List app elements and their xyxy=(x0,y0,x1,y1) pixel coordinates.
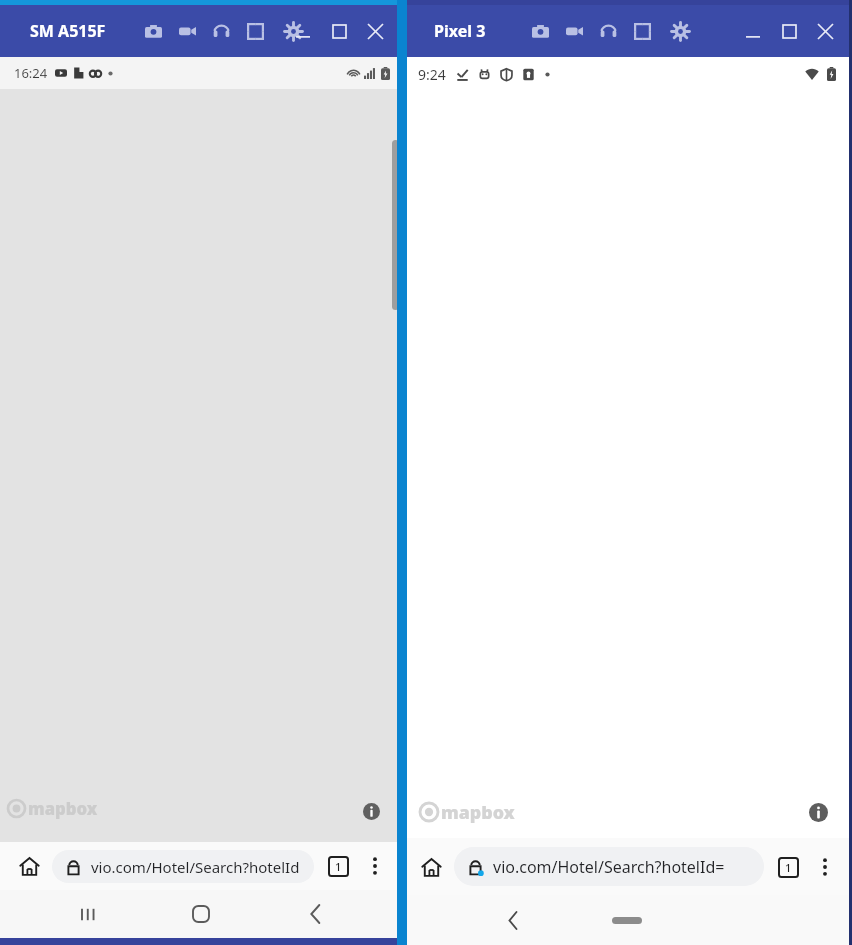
staticText: 1 xyxy=(785,860,792,875)
button[interactable]: Home xyxy=(412,848,450,886)
button[interactable]: Map information xyxy=(360,800,382,822)
button[interactable]: Switch tabs xyxy=(770,849,806,885)
button[interactable]: More options xyxy=(358,849,392,883)
button[interactable]: vio.com/Hotel/Search?hotelId= xyxy=(454,847,764,886)
button[interactable]: Maximize xyxy=(326,18,352,44)
button[interactable]: Close xyxy=(812,18,838,44)
button[interactable]: vio.com/Hotel/Search?hotelId xyxy=(52,850,314,883)
staticText: vio.com/Hotel/Search?hotelId= xyxy=(493,856,725,878)
staticText: 9:24 xyxy=(418,65,446,84)
button[interactable]: Resize xyxy=(242,18,268,44)
button[interactable]: Back xyxy=(490,897,536,943)
button[interactable]: Record screen xyxy=(174,18,200,44)
button[interactable]: Audio xyxy=(208,18,234,44)
staticText: 1 xyxy=(335,859,342,874)
staticText: SM A515F xyxy=(30,20,106,42)
button[interactable]: Minimize xyxy=(290,18,316,44)
button[interactable]: Minimize xyxy=(740,18,766,44)
button[interactable]: Switch tabs xyxy=(320,848,356,884)
button[interactable]: Close xyxy=(362,18,388,44)
staticText: mapbox xyxy=(441,800,515,824)
button[interactable]: More options xyxy=(808,850,842,884)
button[interactable]: Home xyxy=(597,905,657,935)
button[interactable]: Settings xyxy=(667,18,693,44)
button[interactable]: Back xyxy=(289,890,341,938)
staticText: 16:24 xyxy=(14,64,48,82)
staticText: vio.com/Hotel/Search?hotelId xyxy=(91,857,300,877)
button[interactable]: Map information xyxy=(806,800,830,824)
button[interactable]: Home xyxy=(10,847,48,885)
button[interactable]: Settings xyxy=(280,18,306,44)
staticText: Pixel 3 xyxy=(434,20,486,42)
staticText: mapbox xyxy=(28,797,98,820)
button[interactable]: Resize xyxy=(629,18,655,44)
button[interactable]: Record screen xyxy=(561,18,587,44)
button[interactable]: Maximize xyxy=(776,18,802,44)
button[interactable]: Recent apps xyxy=(62,890,114,938)
button[interactable]: Take screenshot xyxy=(527,18,553,44)
button[interactable]: Home xyxy=(175,890,227,938)
button[interactable]: Take screenshot xyxy=(140,18,166,44)
button[interactable]: Audio xyxy=(595,18,621,44)
